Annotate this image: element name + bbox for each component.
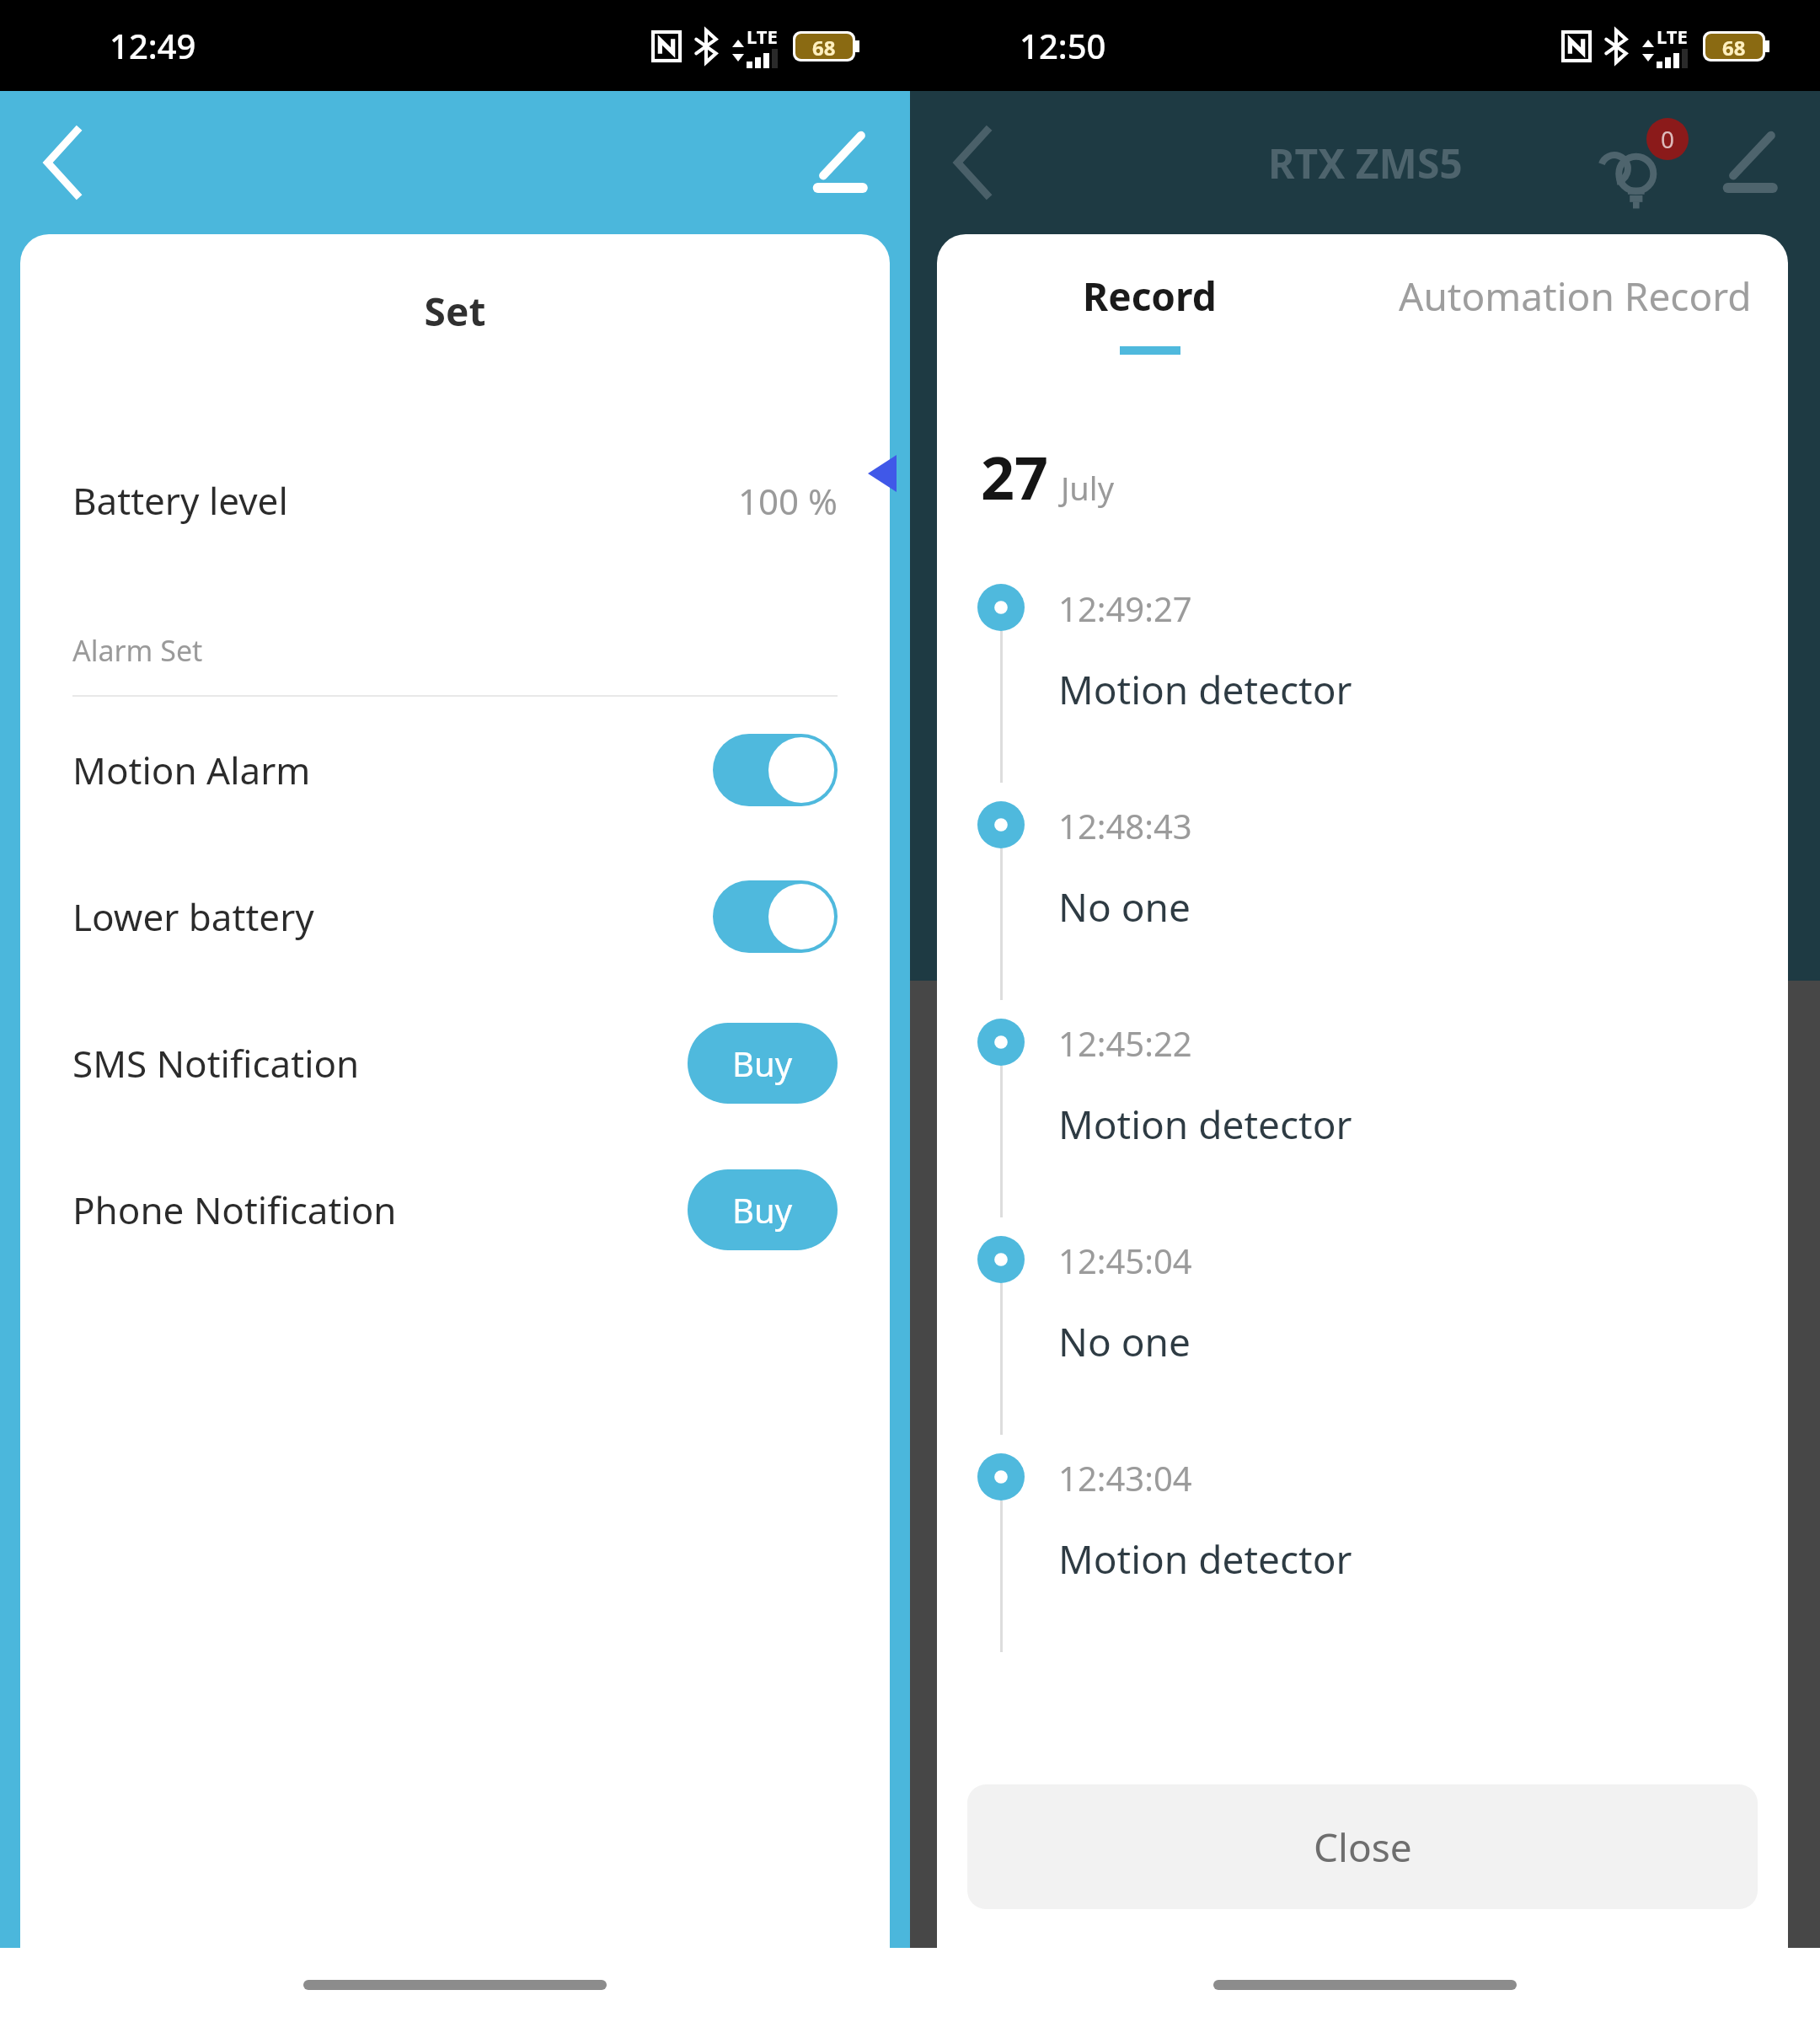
staticText: Lower battery	[72, 891, 314, 942]
staticText: 12:43:04	[1058, 1455, 1192, 1500]
staticText: Automation Record	[1399, 270, 1752, 323]
staticText: 68	[812, 34, 836, 59]
staticText: 27	[981, 436, 1049, 516]
button[interactable]: Edit	[1710, 125, 1786, 201]
staticText: 12:49:27	[1058, 586, 1192, 631]
button[interactable]: Toggle on	[713, 880, 838, 953]
button[interactable]: Buy	[688, 1023, 838, 1104]
button[interactable]: 12:45:22	[937, 1008, 1788, 1226]
staticText: 0	[1661, 123, 1675, 155]
button[interactable]: Battery level	[20, 427, 890, 574]
staticText: Buy	[732, 1187, 793, 1233]
staticText: RTX ZMS5	[1268, 136, 1463, 190]
staticText: No one	[1058, 1315, 1191, 1368]
button[interactable]: 12:45:04	[937, 1226, 1788, 1443]
button[interactable]: Back	[25, 125, 101, 201]
staticText: Set	[20, 285, 890, 338]
button[interactable]: Toggle on	[713, 734, 838, 806]
button[interactable]: 12:49:27	[937, 574, 1788, 791]
button[interactable]: Close	[967, 1784, 1758, 1909]
button[interactable]: Edit	[800, 125, 876, 201]
button[interactable]: Phone Notification	[20, 1137, 890, 1283]
staticText: Record	[1083, 270, 1217, 323]
button[interactable]: Buy	[688, 1169, 838, 1250]
staticText: Motion detector	[1058, 1098, 1352, 1151]
button[interactable]: SMS Notification	[20, 990, 890, 1137]
button[interactable]: Devices	[1601, 116, 1694, 209]
staticText: Motion detector	[1058, 663, 1352, 716]
staticText: Battery level	[72, 475, 288, 526]
staticText: No one	[1058, 880, 1191, 933]
staticText: Motion detector	[1058, 1533, 1352, 1586]
staticText: 12:50	[1020, 23, 1106, 68]
button[interactable]: Automation Record	[1362, 270, 1788, 371]
staticText: 12:45:04	[1058, 1238, 1192, 1283]
staticText: LTE	[747, 24, 778, 49]
button[interactable]: Back	[935, 125, 1011, 201]
button[interactable]: 12:48:43	[937, 791, 1788, 1008]
staticText: 12:48:43	[1058, 803, 1192, 848]
staticText: 68	[1722, 34, 1746, 59]
button[interactable]: Motion Alarm	[20, 697, 890, 843]
staticText: SMS Notification	[72, 1038, 360, 1089]
staticText: Buy	[732, 1040, 793, 1086]
button[interactable]: 12:43:04	[937, 1443, 1788, 1661]
staticText: 12:45:22	[1058, 1020, 1192, 1066]
button[interactable]: Record	[937, 270, 1362, 371]
staticText: Close	[1314, 1821, 1412, 1874]
staticText: July	[1061, 466, 1115, 510]
staticText: Phone Notification	[72, 1185, 397, 1235]
button[interactable]: Lower battery	[20, 843, 890, 990]
staticText: 100 %	[738, 477, 838, 525]
staticText: 12:49	[110, 23, 196, 68]
staticText: Alarm Set	[72, 631, 203, 670]
staticText: Motion Alarm	[72, 745, 311, 795]
staticText: LTE	[1657, 24, 1688, 49]
